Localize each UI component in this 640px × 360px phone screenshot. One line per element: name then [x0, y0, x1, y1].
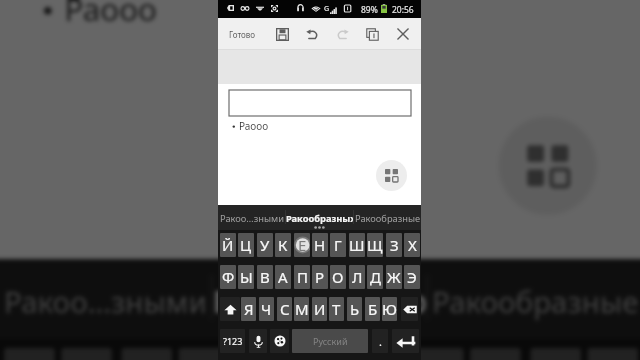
staticText: Ракообразные: [355, 212, 421, 225]
button[interactable]: С: [277, 297, 292, 321]
button[interactable]: Д: [367, 265, 383, 289]
button[interactable]: И: [312, 297, 327, 321]
staticText: В: [260, 267, 270, 287]
button[interactable]: Ш: [349, 233, 365, 257]
staticText: .: [379, 334, 382, 349]
button[interactable]: Э: [404, 265, 420, 289]
button[interactable]: Ф: [220, 265, 236, 289]
button[interactable]: Г: [353, 348, 403, 360]
staticText: А: [278, 267, 288, 287]
button[interactable]: О: [330, 265, 346, 289]
button[interactable]: Notes: [361, 18, 384, 50]
staticText: Щ: [367, 235, 383, 255]
button[interactable]: [220, 297, 240, 321]
staticText: Ж: [387, 267, 401, 287]
button[interactable]: Й: [4, 348, 55, 360]
button[interactable]: М: [294, 297, 309, 321]
button[interactable]: Л: [349, 265, 365, 289]
button[interactable]: Р: [312, 265, 328, 289]
button[interactable]: П: [294, 265, 310, 289]
staticText: Раооо: [239, 119, 269, 133]
button[interactable]: Redo: [331, 18, 354, 50]
button[interactable]: Б: [365, 297, 380, 321]
button[interactable]: Н: [312, 233, 328, 257]
button[interactable]: З: [530, 348, 581, 360]
button[interactable]: У: [257, 233, 273, 257]
staticText: 20:56: [392, 4, 414, 16]
button[interactable]: Ракообразные: [354, 204, 421, 232]
button[interactable]: Ракообразных: [286, 204, 353, 232]
staticText: Я: [244, 299, 254, 319]
button[interactable]: Готово: [218, 18, 262, 50]
button[interactable]: Й: [220, 233, 236, 257]
button[interactable]: Ц: [238, 233, 254, 257]
button[interactable]: Щ: [367, 233, 383, 257]
button[interactable]: Ракообразных: [213, 256, 426, 345]
staticText: С: [280, 299, 290, 319]
button[interactable]: Close: [391, 18, 414, 50]
staticText: Ф: [222, 267, 235, 287]
button[interactable]: Т: [329, 297, 344, 321]
button[interactable]: [249, 329, 267, 353]
button[interactable]: ?123: [220, 329, 245, 353]
staticText: Русский: [313, 335, 348, 347]
button[interactable]: Ракоо…зными: [0, 256, 210, 345]
button[interactable]: Ы: [238, 265, 254, 289]
staticText: Готово: [229, 29, 256, 40]
button[interactable]: К: [178, 348, 229, 360]
staticText: Ш: [349, 235, 365, 255]
staticText: Й: [222, 235, 234, 255]
staticText: ?123: [223, 335, 243, 347]
button[interactable]: Н: [296, 348, 346, 360]
button[interactable]: Ц: [61, 348, 112, 360]
button[interactable]: .: [372, 329, 388, 353]
button[interactable]: Русский: [292, 329, 368, 353]
button[interactable]: З: [386, 233, 402, 257]
button[interactable]: Х: [404, 233, 420, 257]
button[interactable]: Save: [271, 18, 294, 50]
staticText: Д: [370, 267, 381, 287]
staticText: Ы: [240, 267, 253, 287]
button[interactable]: Ш: [413, 348, 464, 360]
button[interactable]: Apps: [376, 160, 407, 191]
staticText: Е: [298, 235, 307, 255]
button[interactable]: Undo: [301, 18, 324, 50]
staticText: Ракообразных: [286, 212, 353, 225]
staticText: И: [314, 299, 326, 319]
button[interactable]: У: [121, 348, 172, 360]
staticText: М: [295, 299, 309, 319]
staticText: Н: [314, 235, 326, 255]
staticText: П: [297, 267, 308, 287]
button[interactable]: А: [275, 265, 291, 289]
button[interactable]: В: [257, 265, 273, 289]
button[interactable]: К: [275, 233, 291, 257]
button[interactable]: [270, 329, 289, 353]
staticText: Ч: [261, 299, 272, 319]
button[interactable]: Ж: [386, 265, 402, 289]
button[interactable]: Щ: [470, 348, 521, 360]
staticText: 89%: [361, 4, 378, 16]
button[interactable]: Е: [294, 233, 310, 257]
button[interactable]: [401, 297, 418, 321]
staticText: З: [390, 235, 399, 255]
staticText: К: [278, 235, 288, 255]
button[interactable]: [392, 329, 419, 353]
button[interactable]: Х: [587, 348, 638, 360]
button[interactable]: [229, 90, 411, 116]
button[interactable]: Ь: [347, 297, 362, 321]
button[interactable]: Г: [330, 233, 346, 257]
button[interactable]: Ракоо…зными: [218, 204, 285, 232]
button[interactable]: Е: [239, 348, 289, 360]
button[interactable]: Ю: [382, 297, 397, 321]
button[interactable]: Ракообразные: [429, 256, 640, 345]
button[interactable]: Я: [241, 297, 256, 321]
button[interactable]: Ч: [259, 297, 274, 321]
button[interactable]: Apps: [499, 117, 597, 215]
